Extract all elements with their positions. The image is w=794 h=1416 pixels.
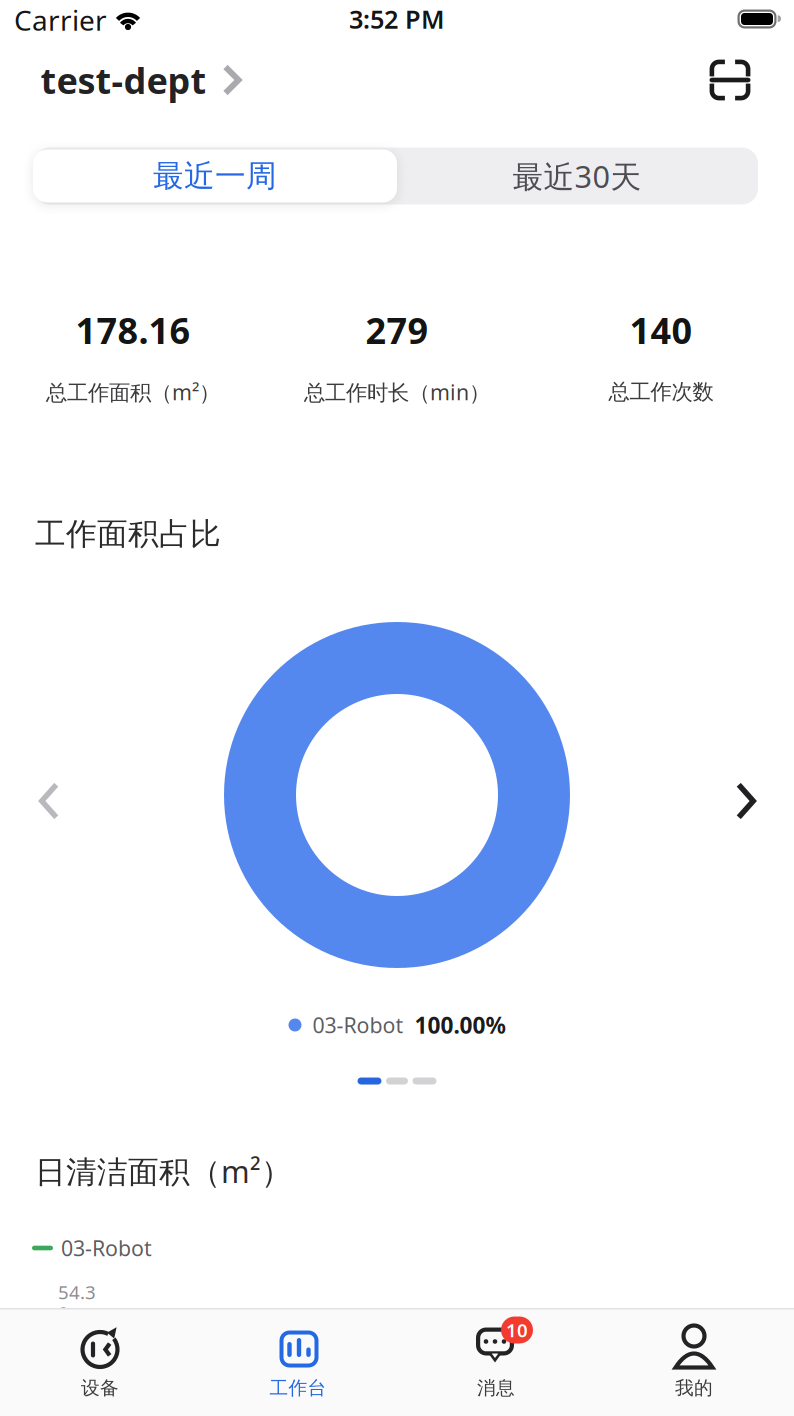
staticText: 总工作面积（m²） [46,378,220,406]
button[interactable]: 消息 [397,1308,595,1416]
button[interactable]: 设备 [1,1308,199,1416]
staticText: 3:52 PM [349,2,445,36]
staticText: 140 [629,306,692,354]
staticText: 10 [506,1318,528,1342]
button[interactable]: 最近30天 [396,147,758,204]
staticText: test-dept [40,56,206,104]
staticText: 0 [58,1301,69,1325]
button[interactable]: Next chart [718,763,774,839]
staticText: 消息 [477,1376,515,1399]
button[interactable]: 工作台 [199,1308,397,1416]
staticText: 178.16 [75,306,190,354]
staticText: 最近30天 [512,156,641,196]
staticText: 工作台 [269,1376,326,1399]
staticText: 279 [365,306,428,354]
staticText: 03-Robot [312,1011,403,1039]
button[interactable]: 最近一周 [34,147,396,204]
staticText: 设备 [81,1376,119,1399]
staticText: 100.00% [414,1010,505,1040]
staticText: 总工作时长（min） [304,378,490,406]
button[interactable]: test-dept [40,56,241,104]
staticText: 最近一周 [153,157,277,195]
staticText: Carrier [14,1,107,39]
button[interactable]: Previous chart [21,763,77,839]
staticText: 我的 [675,1376,713,1399]
staticText: 03-Robot [61,1234,152,1262]
staticText: 54.3 [58,1280,96,1304]
button[interactable]: 我的 [595,1308,793,1416]
button[interactable]: Scan QR code [709,59,750,100]
staticText: 工作面积占比 [35,515,221,553]
staticText: 总工作次数 [608,379,713,405]
staticText: 日清洁面积（m²） [35,1151,292,1191]
